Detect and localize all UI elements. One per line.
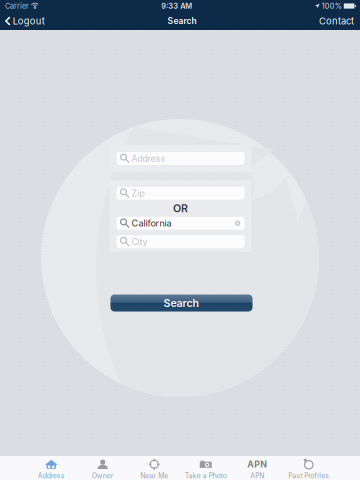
staticText: 100% <box>322 2 342 10</box>
button[interactable]: Search <box>110 294 252 311</box>
staticText: Contact <box>319 15 354 27</box>
staticText: Past Profiles <box>288 471 329 480</box>
staticText: Logout <box>13 15 45 27</box>
button[interactable]: Near Me <box>128 456 180 480</box>
staticText: Address <box>38 471 65 480</box>
staticText: Take a Photo <box>185 471 227 480</box>
staticText: Search <box>167 16 196 26</box>
button[interactable]: Contact <box>313 12 360 30</box>
staticText: Address <box>131 153 165 164</box>
button[interactable]: Logout <box>0 12 51 30</box>
staticText: Owner <box>92 471 114 480</box>
staticText: Search <box>163 296 199 309</box>
button[interactable]: Take a Photo <box>180 456 231 480</box>
button[interactable]: APN <box>231 456 283 480</box>
staticText: APN <box>250 471 264 480</box>
staticText: Carrier <box>5 2 29 10</box>
staticText: OR <box>173 202 188 215</box>
staticText: Zip <box>131 188 144 198</box>
staticText: APN <box>247 459 267 469</box>
button[interactable]: Past Profiles <box>283 456 334 480</box>
button[interactable]: Owner <box>77 456 128 480</box>
staticText: 9:33 AM <box>161 1 192 10</box>
staticText: California <box>131 218 171 229</box>
staticText: City <box>131 236 147 247</box>
staticText: Near Me <box>140 471 168 480</box>
button[interactable]: Address <box>25 456 77 480</box>
